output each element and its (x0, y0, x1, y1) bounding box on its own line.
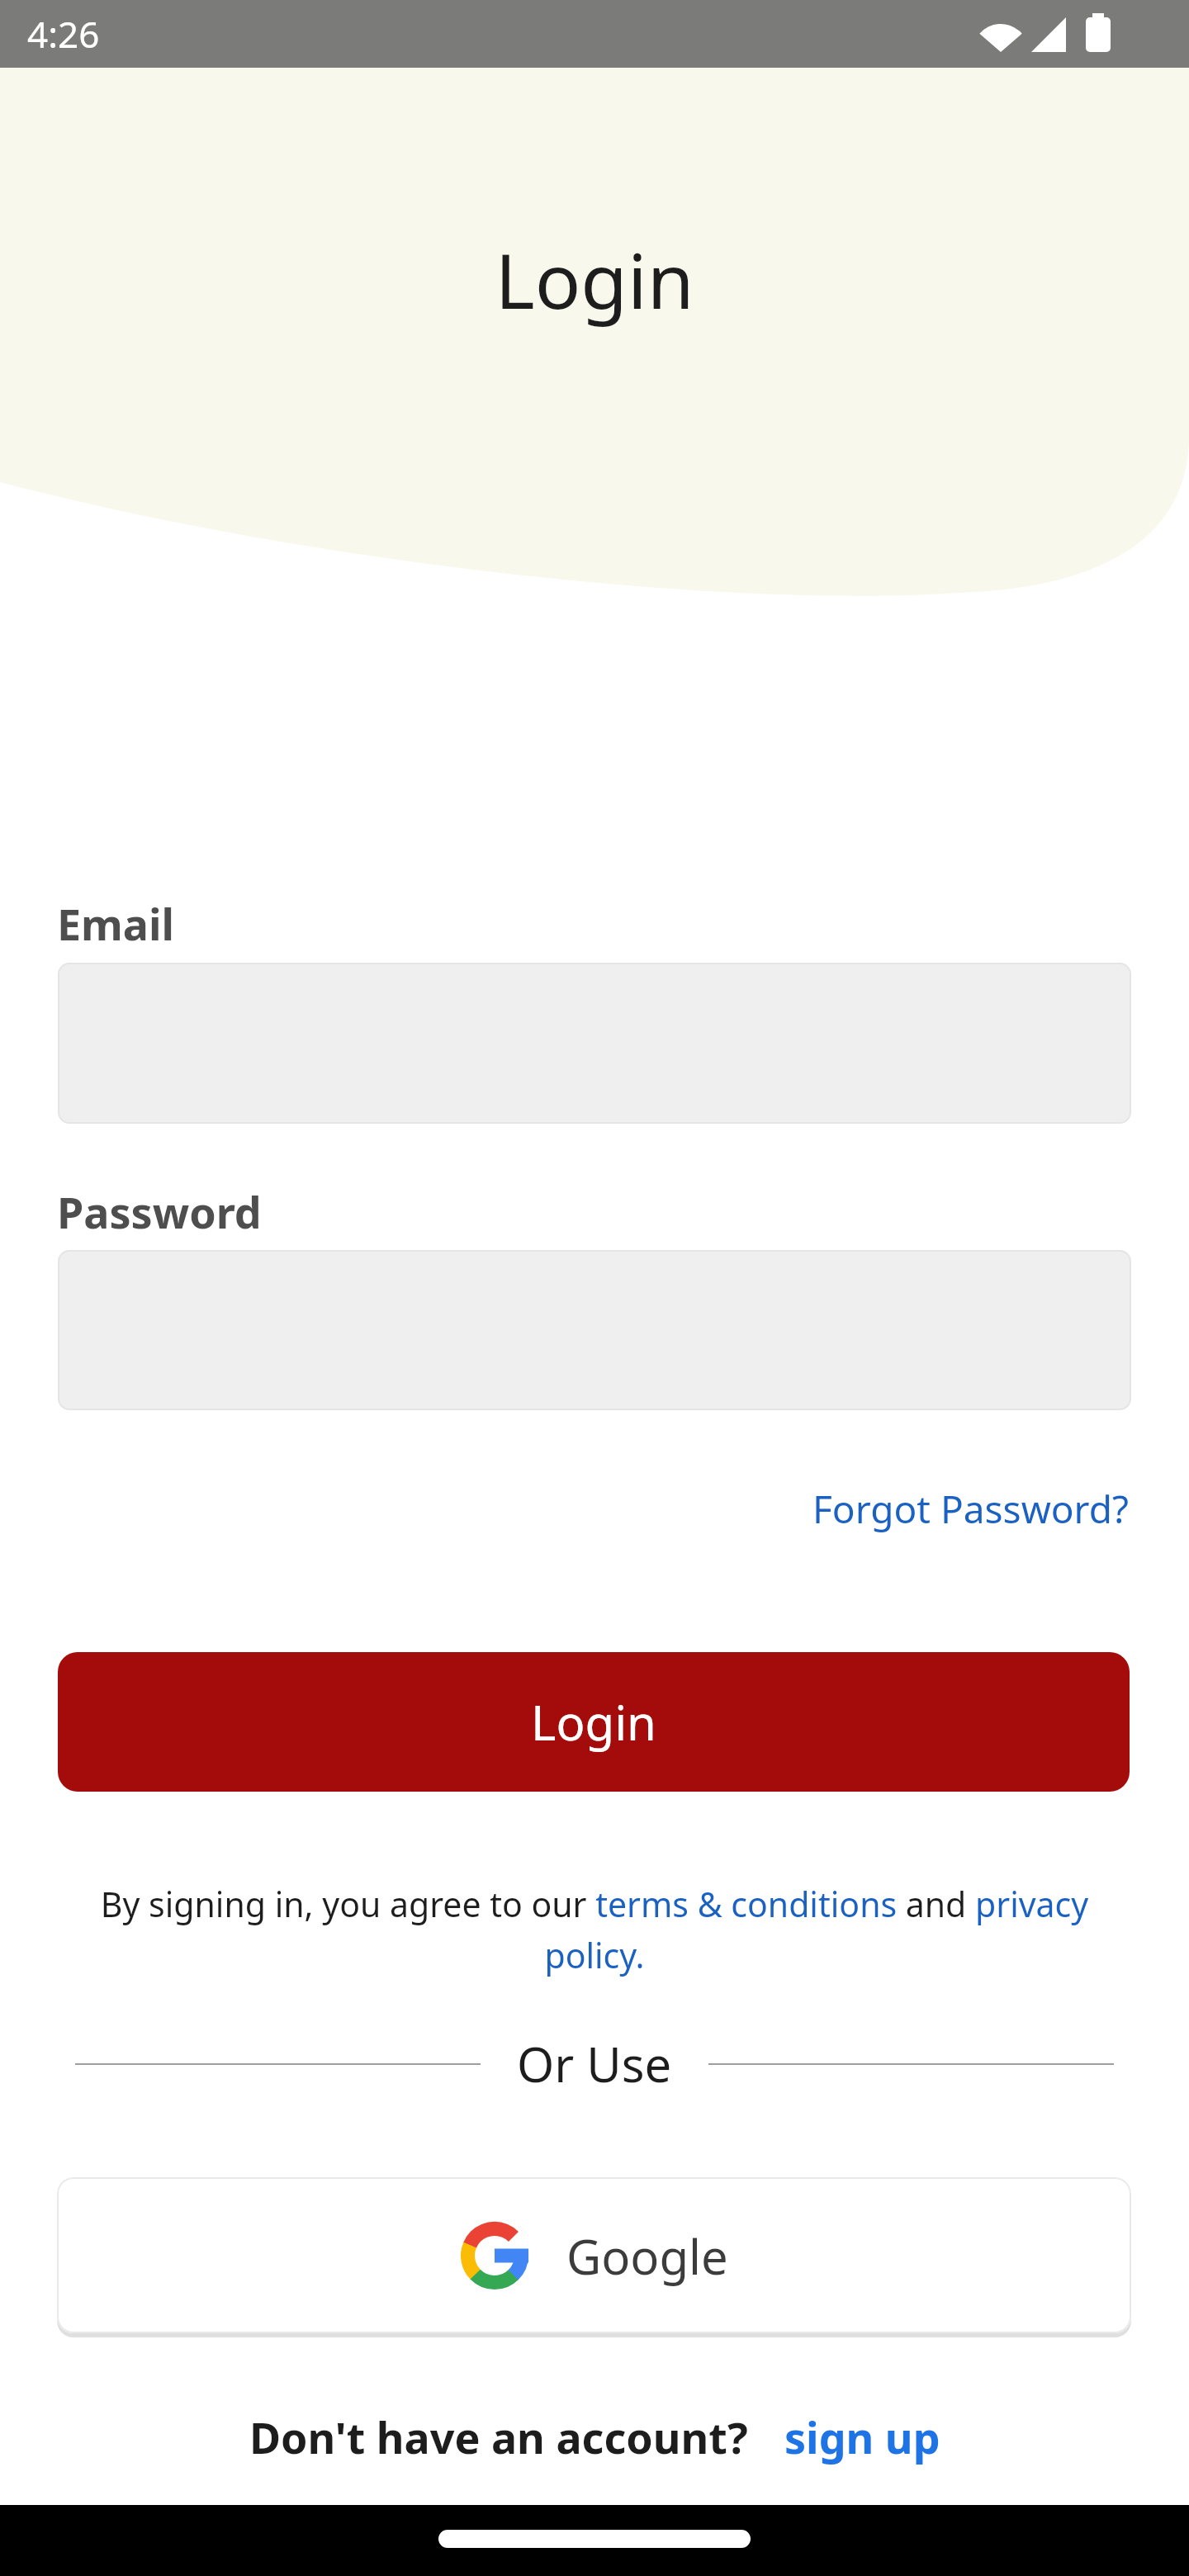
button[interactable]: Google (57, 2177, 1131, 2333)
staticText: Login (531, 1689, 656, 1754)
button[interactable]: Forgot Password? (812, 1483, 1129, 1535)
staticText: Login (0, 228, 1189, 331)
staticText: Don't have an account? (249, 2408, 748, 2466)
button[interactable]: Login (58, 1652, 1130, 1792)
staticText: 4:26 (27, 9, 100, 59)
staticText: Email (57, 894, 175, 953)
staticText: Password (57, 1182, 262, 1241)
staticText: Google (566, 2223, 728, 2289)
button[interactable]: sign up (784, 2408, 940, 2466)
staticText: By signing in, you agree to our terms & … (70, 1881, 1119, 1978)
staticText: Or Use (517, 2031, 672, 2096)
